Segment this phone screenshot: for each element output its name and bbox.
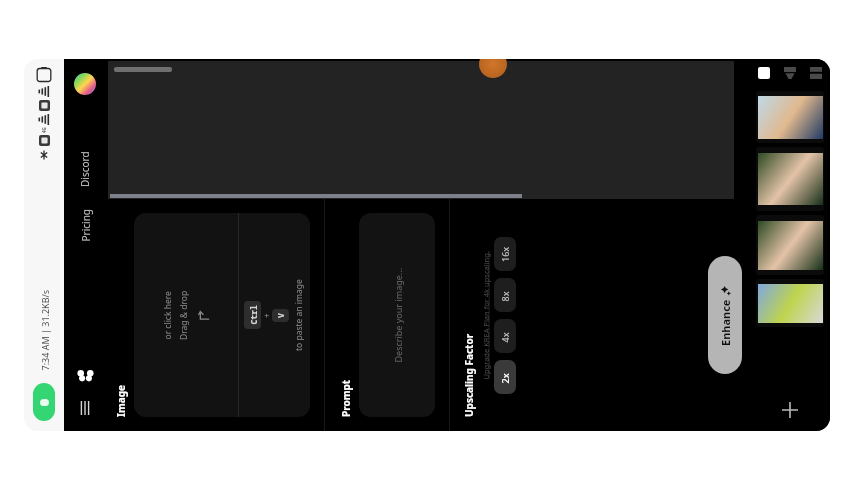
staticText: 4x bbox=[498, 331, 510, 342]
staticText: Image bbox=[114, 385, 128, 417]
staticText: Enhance bbox=[718, 299, 733, 346]
staticText: 4G bbox=[41, 127, 47, 133]
button[interactable]: Menu bbox=[74, 397, 96, 419]
button[interactable]: Compare view bbox=[784, 67, 796, 79]
staticText: Upgrade KREA Plan for 4k upscaling. bbox=[480, 250, 490, 379]
staticText: Prompt bbox=[339, 379, 353, 417]
button[interactable]: or click here bbox=[134, 213, 310, 417]
button[interactable]: 16x bbox=[494, 237, 516, 271]
button[interactable]: Describe your image... bbox=[359, 213, 435, 417]
staticText: 8x bbox=[498, 290, 510, 301]
staticText: 7:34 AM | 31.2KB/s bbox=[38, 289, 50, 370]
button[interactable]: 8x bbox=[494, 278, 516, 312]
button[interactable]: 4x bbox=[494, 319, 516, 353]
button[interactable]: Account bbox=[74, 73, 96, 95]
button[interactable]: Krea logo bbox=[75, 365, 95, 385]
button[interactable]: Image thumbnail bbox=[756, 91, 824, 143]
staticText: Pricing bbox=[78, 208, 92, 241]
button[interactable]: Discord bbox=[78, 151, 92, 187]
button[interactable]: Pricing bbox=[78, 209, 92, 242]
button[interactable]: 2x bbox=[494, 360, 516, 394]
staticText: V bbox=[275, 313, 286, 318]
staticText: 16x bbox=[499, 246, 511, 262]
staticText: or click here bbox=[161, 290, 173, 339]
button[interactable]: Add image bbox=[756, 393, 824, 427]
staticText: Discord bbox=[78, 151, 92, 187]
staticText: 2x bbox=[498, 372, 510, 383]
button[interactable]: Split view bbox=[810, 67, 822, 79]
button[interactable]: Single view bbox=[758, 67, 770, 79]
button[interactable]: Notification bbox=[33, 383, 55, 421]
staticText: Upscaling Factor bbox=[462, 333, 476, 417]
staticText: + bbox=[261, 313, 272, 318]
staticText: Describe your image... bbox=[391, 267, 403, 362]
button[interactable]: Image thumbnail bbox=[756, 279, 824, 327]
staticText: Drag & drop bbox=[178, 290, 190, 340]
staticText: Ctrl bbox=[247, 304, 258, 324]
button[interactable]: Upgrade KREA Plan for 4k upscaling. bbox=[480, 251, 490, 380]
button[interactable]: Enhance bbox=[708, 256, 742, 374]
button[interactable]: Image thumbnail bbox=[756, 215, 824, 275]
staticText: to paste an image bbox=[293, 279, 305, 351]
button[interactable]: Image thumbnail bbox=[756, 147, 824, 211]
